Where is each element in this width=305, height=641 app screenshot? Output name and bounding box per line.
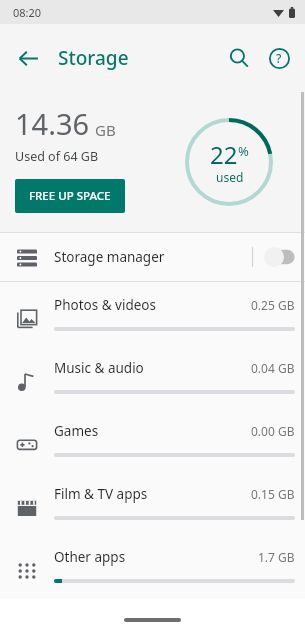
staticText: 1.7 GB [258,549,295,565]
button[interactable]: Search [219,38,259,78]
button[interactable]: Help [259,38,299,78]
staticText: % [238,142,249,160]
button[interactable]: Other apps [0,534,305,597]
staticText: FREE UP SPACE [29,188,111,204]
staticText: 0.04 GB [251,360,295,376]
button[interactable]: Storage manager [0,233,305,281]
staticText: Games [54,422,251,440]
button[interactable]: Music & audio [0,345,305,408]
staticText: 0.15 GB [251,486,295,502]
staticText: Storage [58,45,129,71]
button[interactable]: Film & TV apps [0,471,305,534]
button[interactable]: Photos & videos [0,282,305,345]
staticText: ? [276,50,282,66]
staticText: Storage manager [54,248,252,266]
staticText: 0.25 GB [251,297,295,313]
staticText: Other apps [54,548,258,566]
staticText: Film & TV apps [54,485,251,503]
staticText: GB [95,120,116,140]
staticText: Used of 64 GB [15,148,99,165]
staticText: 08:20 [13,5,42,20]
staticText: 22 [210,138,238,171]
staticText: Photos & videos [54,296,251,314]
button[interactable]: Back [8,38,48,78]
staticText: used [216,169,244,185]
button[interactable]: Games [0,408,305,471]
staticText: Music & audio [54,359,251,377]
staticText: 0.00 GB [251,423,295,439]
button[interactable]: FREE UP SPACE [15,179,125,213]
button[interactable]: Storage manager toggle [253,233,305,281]
staticText: 14.36 [15,104,90,143]
